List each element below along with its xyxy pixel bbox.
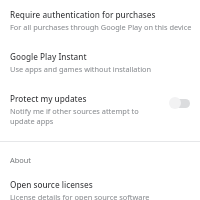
staticText: Google Play Instant [10, 51, 87, 62]
staticText: About [10, 155, 31, 165]
staticText: Open source licenses [10, 179, 93, 190]
button[interactable]: Protect my updates toggle [169, 96, 193, 110]
staticText: Use apps and games without installation [10, 64, 152, 74]
staticText: License details for open source software [10, 192, 150, 200]
button[interactable]: Protect my updates [0, 93, 200, 126]
button[interactable]: Open source licenses [0, 179, 200, 200]
staticText: Protect my updates [10, 93, 87, 104]
button[interactable]: Require authentication for purchases [0, 9, 200, 32]
staticText: For all purchases through Google Play on… [10, 22, 192, 32]
staticText: Notify me if other sources attempt to up… [10, 106, 164, 126]
staticText: Require authentication for purchases [10, 9, 156, 20]
button[interactable]: Google Play Instant [0, 51, 200, 74]
